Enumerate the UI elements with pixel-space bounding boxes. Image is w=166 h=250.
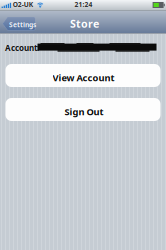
staticText: Store (70, 16, 99, 31)
staticText: Settings (9, 20, 36, 29)
staticText: O2-UK (13, 0, 33, 9)
button[interactable]: View Account (5, 64, 160, 87)
button[interactable]: Settings (2, 17, 35, 30)
staticText: Account: (5, 42, 39, 53)
staticText: Sign Out (64, 105, 103, 118)
button[interactable]: Sign Out (5, 98, 160, 121)
staticText: View Account (52, 71, 114, 84)
staticText: 21:24 (75, 0, 93, 9)
